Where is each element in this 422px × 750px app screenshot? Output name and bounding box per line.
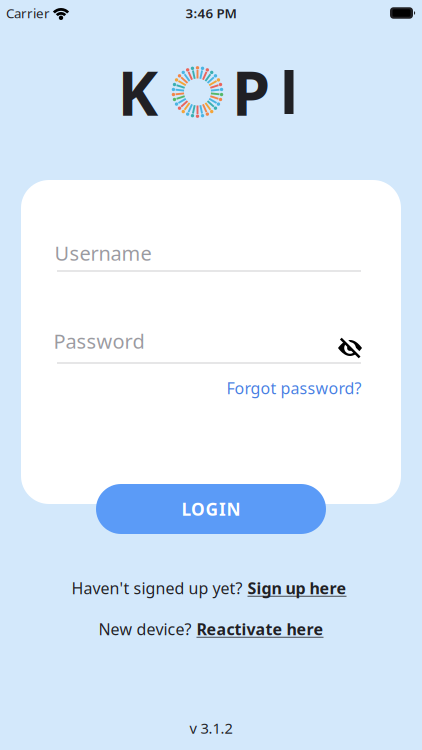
staticText: 3:46 PM bbox=[185, 4, 236, 22]
staticText: Username bbox=[54, 240, 151, 266]
button[interactable]: Forgot password? bbox=[226, 377, 361, 399]
staticText: Carrier bbox=[6, 4, 50, 22]
staticText: P bbox=[232, 51, 270, 133]
button[interactable]: Show password bbox=[338, 338, 362, 358]
staticText: Haven't signed up yet? bbox=[71, 577, 242, 599]
button[interactable]: Reactivate here bbox=[196, 618, 323, 640]
staticText: LOGIN bbox=[181, 497, 240, 520]
staticText: New device? bbox=[98, 618, 191, 640]
staticText: v 3.1.2 bbox=[189, 718, 232, 738]
staticText: Password bbox=[53, 328, 144, 354]
staticText: Forgot password? bbox=[226, 377, 361, 399]
staticText: Reactivate here bbox=[196, 618, 323, 640]
staticText: Sign up here bbox=[247, 577, 346, 599]
button[interactable]: Sign up here bbox=[247, 577, 346, 599]
button[interactable]: LOGIN bbox=[96, 484, 326, 534]
staticText: K bbox=[117, 51, 158, 133]
